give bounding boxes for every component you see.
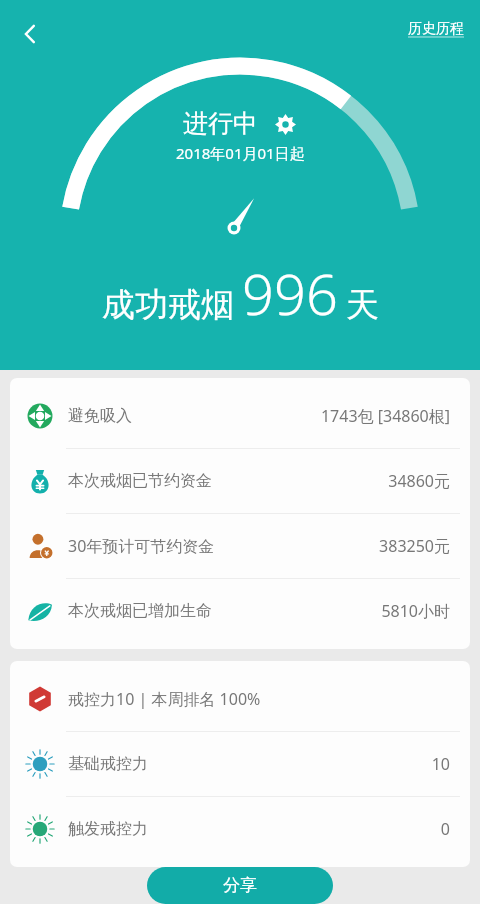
button[interactable]: 避免吸入	[10, 384, 470, 448]
staticText: 天	[346, 284, 379, 326]
staticText: 0	[440, 818, 450, 840]
staticText: 历史历程	[408, 20, 464, 38]
button[interactable]: 本次戒烟已增加生命	[10, 579, 470, 643]
staticText: 5810小时	[381, 600, 450, 622]
staticText: 383250元	[379, 535, 450, 557]
button[interactable]: 戒控力10 | 本周排名 100%	[10, 667, 470, 731]
staticText: 本次戒烟已节约资金	[68, 471, 212, 491]
staticText: 分享	[223, 875, 257, 896]
staticText: 基础戒控力	[68, 754, 148, 774]
staticText: 成功戒烟	[102, 284, 234, 326]
staticText: 2018年01月01日起	[176, 143, 305, 163]
button[interactable]: Settings	[272, 111, 298, 137]
staticText: 本次戒烟已增加生命	[68, 601, 212, 621]
staticText: 996	[242, 255, 338, 331]
staticText: 避免吸入	[68, 406, 132, 426]
staticText: 10	[431, 753, 450, 775]
button[interactable]: 本次戒烟已节约资金	[10, 449, 470, 513]
button[interactable]: 触发戒控力	[10, 797, 470, 861]
staticText: 30年预计可节约资金	[68, 535, 215, 557]
staticText: 触发戒控力	[68, 819, 148, 839]
staticText: 戒控力10 | 本周排名 100%	[68, 688, 261, 710]
staticText: 34860元	[388, 470, 450, 492]
button[interactable]: 30年预计可节约资金	[10, 514, 470, 578]
button[interactable]: Back	[10, 14, 50, 54]
staticText: 1743包 [34860根]	[320, 405, 450, 427]
staticText: 进行中	[183, 108, 258, 139]
button[interactable]: 历史历程	[408, 20, 464, 38]
button[interactable]: 基础戒控力	[10, 732, 470, 796]
button[interactable]: 分享	[147, 867, 333, 904]
